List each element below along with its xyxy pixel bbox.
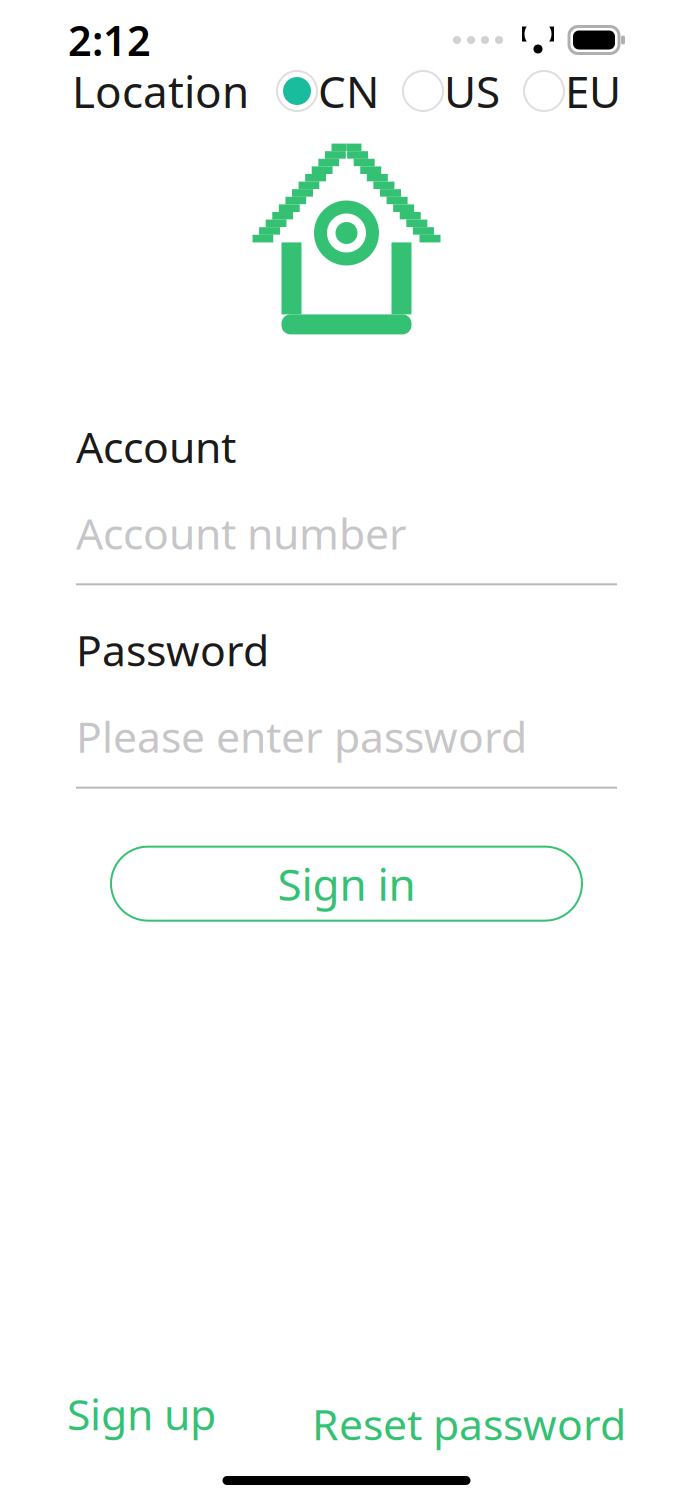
- button[interactable]: US: [403, 62, 500, 120]
- button[interactable]: Sign up: [67, 1385, 216, 1442]
- button[interactable]: Reset password: [312, 1385, 626, 1452]
- staticText: US: [444, 62, 500, 120]
- staticText: Sign in: [277, 854, 415, 913]
- staticText: Account number: [76, 505, 407, 561]
- staticText: EU: [565, 62, 621, 120]
- staticText: Account: [76, 418, 236, 475]
- staticText: Sign up: [67, 1385, 216, 1442]
- staticText: Reset password: [312, 1395, 626, 1452]
- staticText: 2:12: [68, 13, 151, 67]
- staticText: CN: [318, 62, 379, 120]
- button[interactable]: EU: [524, 62, 621, 120]
- button[interactable]: Sign in: [111, 847, 582, 921]
- button[interactable]: CN: [277, 62, 379, 120]
- staticText: Location: [72, 62, 249, 120]
- staticText: Please enter password: [76, 708, 527, 765]
- staticText: Password: [76, 621, 269, 678]
